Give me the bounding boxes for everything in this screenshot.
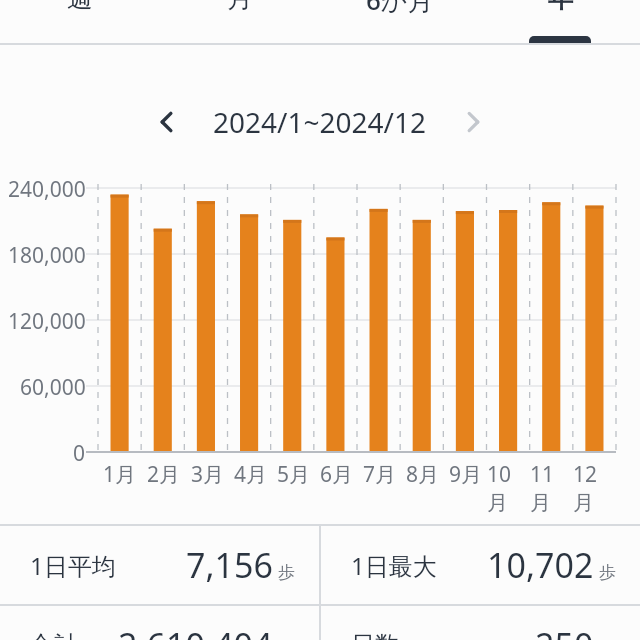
staticText: 10,702 [487, 542, 594, 588]
staticText: 2,610,404 [118, 622, 273, 640]
button[interactable]: 年 [480, 0, 640, 45]
button[interactable]: Previous year range [143, 98, 191, 146]
staticText: 11月 [530, 460, 573, 516]
staticText: 120,000 [8, 307, 86, 336]
staticText: 歩 [599, 562, 616, 583]
staticText: 3月 [191, 460, 225, 489]
staticText: 2月 [147, 460, 181, 489]
staticText: 週 [67, 0, 93, 15]
button[interactable]: 1日平均 [0, 526, 319, 604]
staticText: 7月 [363, 460, 397, 489]
staticText: 6月 [320, 460, 354, 489]
staticText: 合計 [30, 630, 78, 640]
button[interactable]: 1日最大 [321, 526, 640, 604]
staticText: 8月 [406, 460, 440, 489]
staticText: 0 [73, 439, 86, 468]
staticText: 60,000 [20, 373, 86, 402]
staticText: 月 [227, 0, 253, 15]
staticText: 6か月 [366, 0, 434, 18]
staticText: 10月 [487, 460, 530, 516]
staticText: 2024/1~2024/12 [213, 103, 427, 141]
button[interactable]: 合計 [0, 606, 319, 640]
staticText: 日数 [351, 630, 399, 640]
staticText: 4月 [234, 460, 268, 489]
staticText: 1日平均 [30, 549, 116, 582]
staticText: 180,000 [8, 241, 86, 270]
button[interactable]: 6か月 [320, 0, 480, 45]
staticText: 250 [535, 622, 594, 640]
button[interactable]: Next year range [449, 98, 497, 146]
staticText: 5月 [277, 460, 311, 489]
staticText: 9月 [449, 460, 483, 489]
button[interactable]: 日数 [321, 606, 640, 640]
staticText: 歩 [278, 562, 295, 583]
button[interactable]: 月 [160, 0, 320, 45]
staticText: 1日最大 [351, 549, 437, 582]
staticText: 240,000 [8, 175, 86, 204]
staticText: 7,156 [186, 542, 273, 588]
staticText: 12月 [573, 460, 616, 516]
staticText: 年 [547, 0, 573, 15]
staticText: 1月 [103, 460, 137, 489]
button[interactable]: 週 [0, 0, 160, 45]
